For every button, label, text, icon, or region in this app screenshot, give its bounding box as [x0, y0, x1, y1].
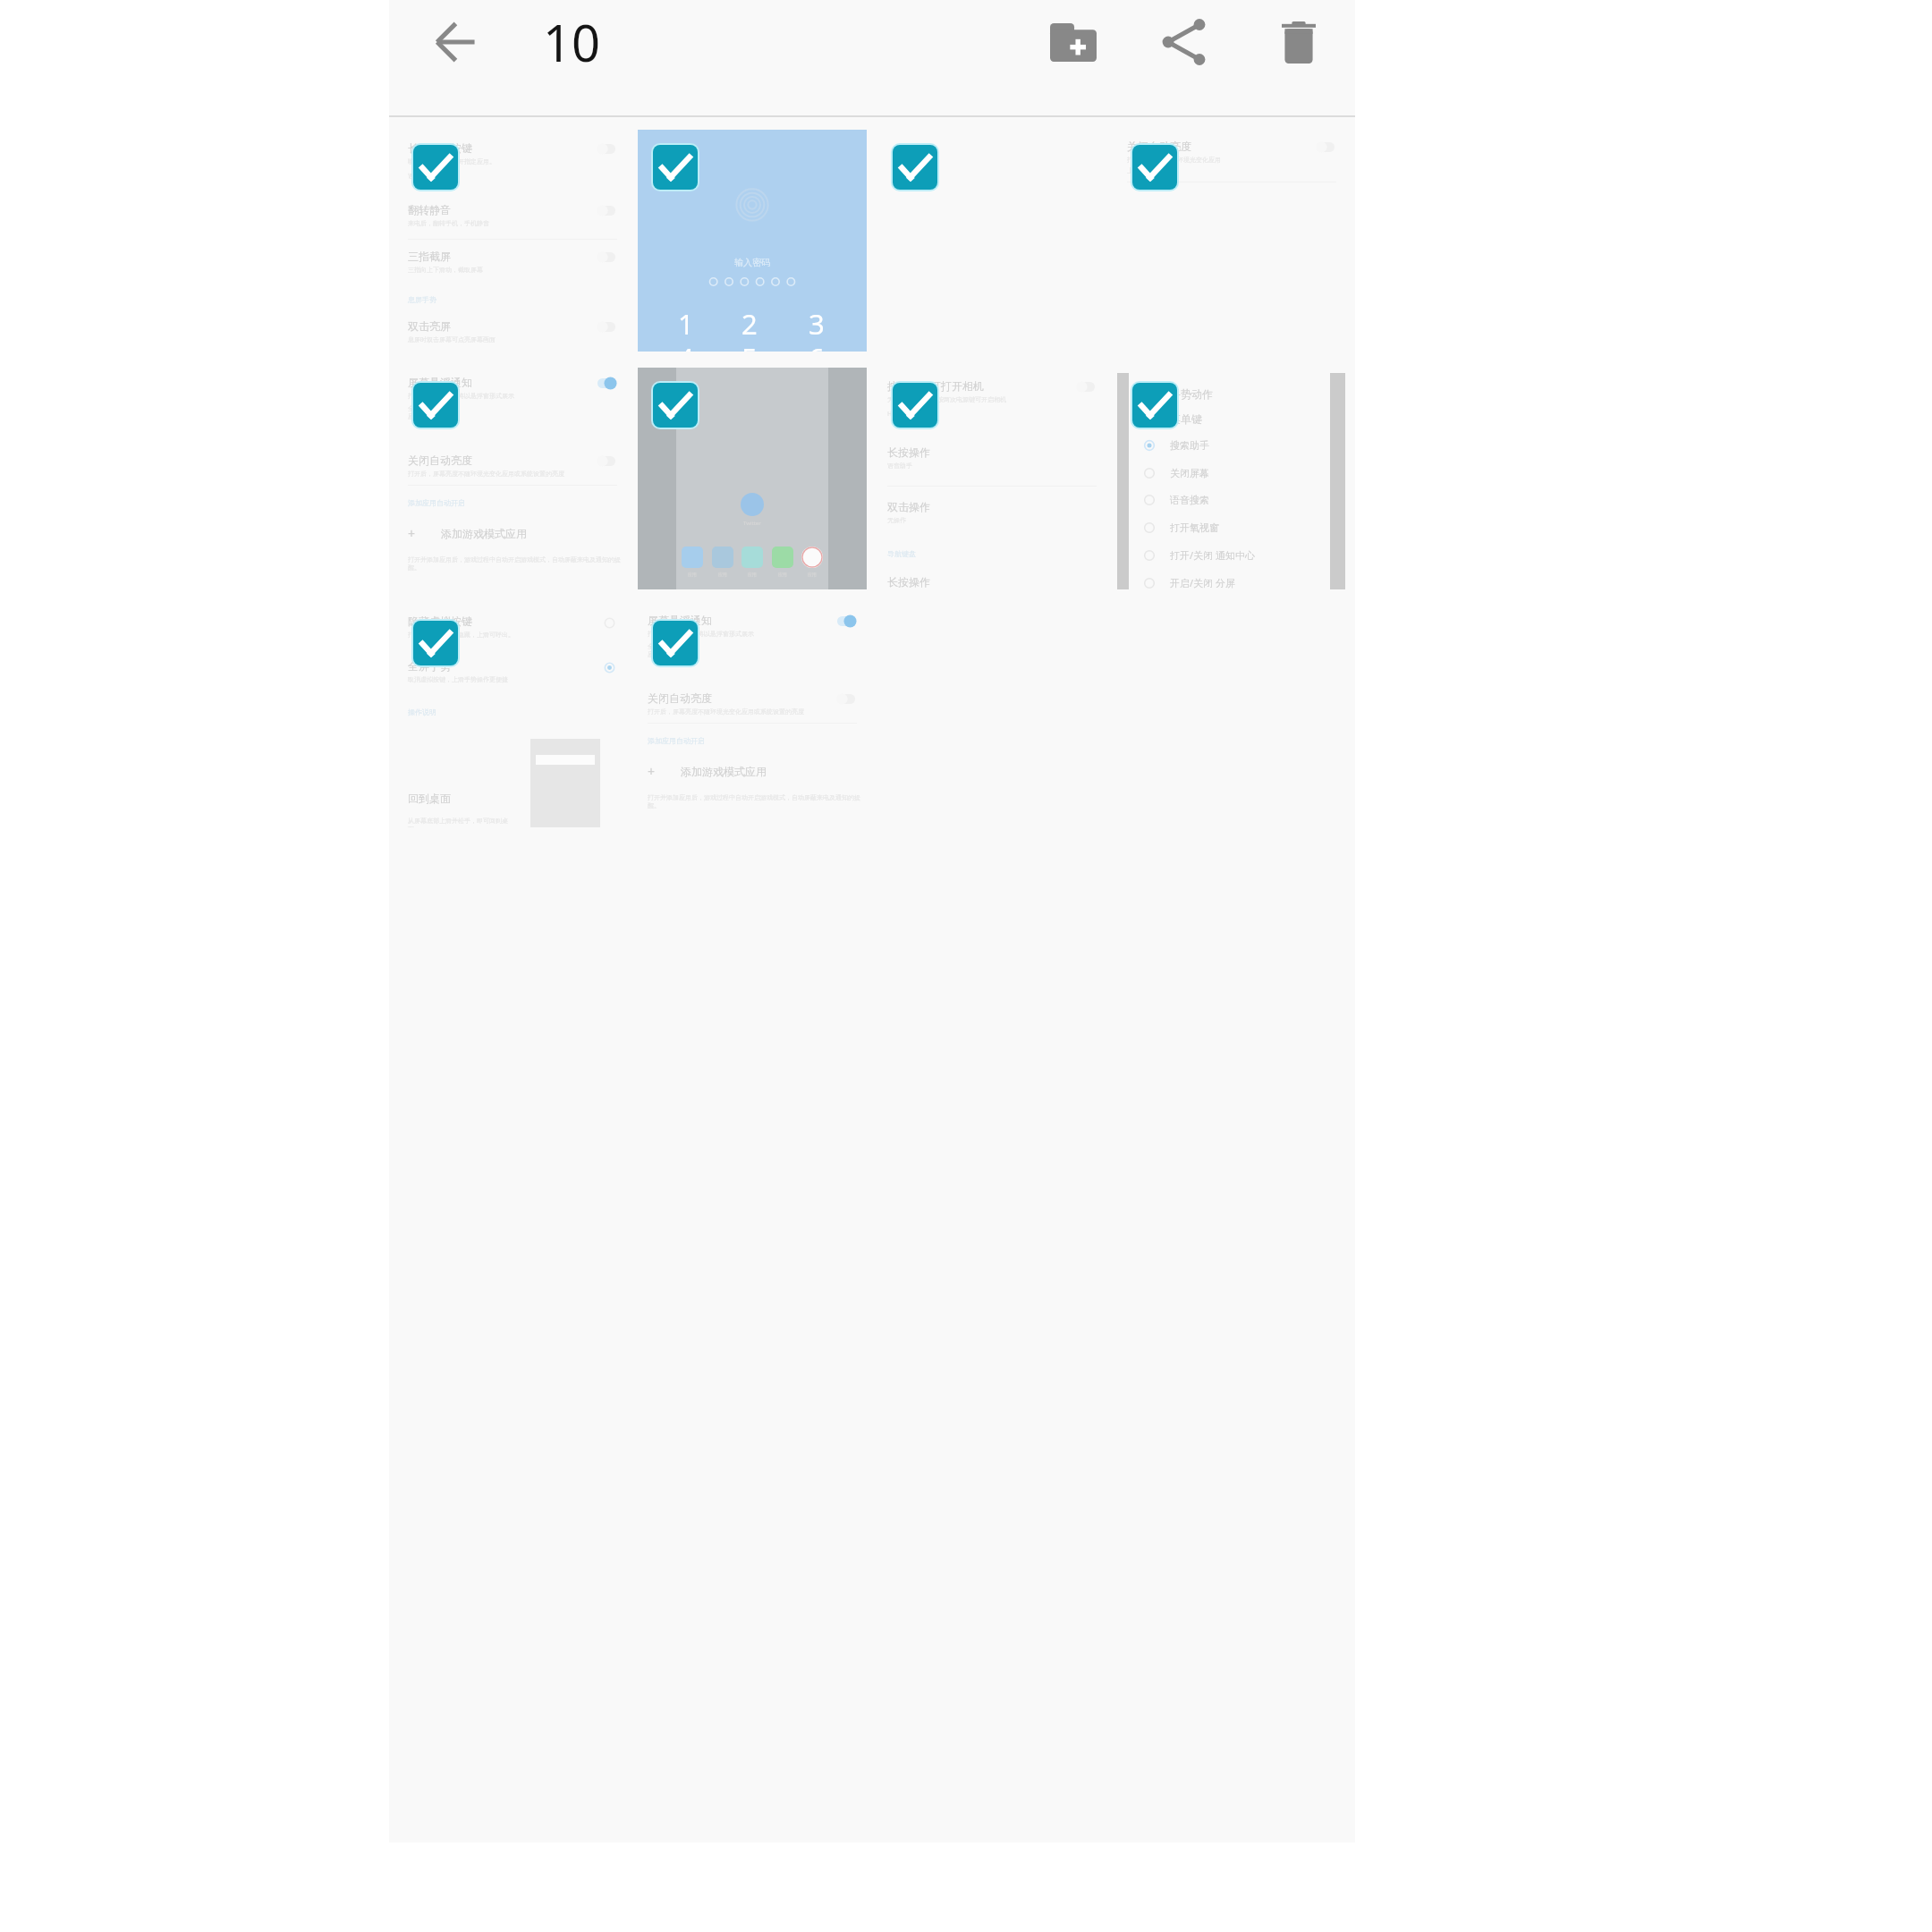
staticText: 屏幕悬浮通知: [648, 614, 712, 627]
staticText: 添加应用自动开启: [408, 498, 465, 507]
button[interactable]: Screenshot 4, selected: [1117, 130, 1346, 352]
staticText: 操作说明: [408, 708, 436, 716]
staticText: 语音助手: [408, 172, 433, 180]
staticText: 应用: [718, 572, 727, 577]
staticText: 语音搜索: [1170, 494, 1209, 506]
staticText: +: [648, 763, 656, 780]
staticText: 翻转静音: [408, 203, 451, 216]
staticText: 无论屏幕状态下，按两次电源键可开启相机: [887, 395, 1006, 403]
button[interactable]: Screenshot 2, selected: [638, 130, 867, 352]
staticText: 长按侧边按键: [408, 141, 472, 155]
staticText: 3: [809, 305, 825, 343]
staticText: 回到桌面: [408, 792, 451, 805]
button[interactable]: Back: [413, 0, 497, 84]
staticText: 来电后，翻转手机，手机静音: [408, 219, 489, 227]
staticText: 打开后，新的通知将以悬浮窗形式展示: [648, 630, 754, 638]
staticText: 唤醒语音助手或打开指定应用。: [408, 157, 496, 165]
staticText: 5: [741, 339, 758, 352]
staticText: 关闭自动亮度: [648, 691, 712, 705]
staticText: 双击操作: [887, 500, 930, 513]
staticText: 关闭自动亮度: [1127, 140, 1191, 153]
staticText: 三指截屏: [408, 250, 451, 263]
staticText: 全屏手势: [408, 659, 451, 673]
staticText: 输入密码: [734, 257, 770, 268]
staticText: 长按操作: [887, 445, 930, 459]
staticText: 按两次即可打开相机: [887, 379, 984, 393]
staticText: 10: [543, 8, 601, 76]
staticText: 打开后，新的通知将以悬浮窗形式展示: [408, 392, 514, 400]
staticText: 打开后，屏幕亮度不随环境光变化应用或系统设置的亮度: [408, 470, 564, 478]
button[interactable]: Screenshot 3, selected: [877, 130, 1106, 352]
staticText: 隐藏虚拟按键: [408, 614, 472, 628]
staticText: 打开并添加应用后，游戏过程中自动开启游戏模式，自动屏蔽来电及通知的提醒。: [648, 793, 867, 810]
staticText: +: [408, 525, 416, 542]
staticText: 打开后，虚拟按键隐藏，上滑可呼出。: [408, 631, 514, 639]
button[interactable]: Screenshot 8, selected: [1117, 368, 1346, 589]
staticText: 无操作: [887, 516, 906, 524]
staticText: 2: [741, 305, 758, 343]
staticText: 息屏时双击屏幕可点亮屏幕画面: [408, 335, 496, 343]
staticText: 全部 应用: [408, 404, 420, 421]
button[interactable]: Delete: [1257, 0, 1341, 84]
staticText: 6: [809, 339, 825, 352]
button[interactable]: Screenshot 5, selected: [398, 368, 627, 589]
staticText: 关闭自动亮度: [408, 453, 472, 467]
staticText: 4: [678, 339, 694, 352]
staticText: 打开/关闭 通知中心: [1170, 548, 1255, 562]
staticText: 从屏幕底部上滑并松手，即可回到桌面。: [408, 817, 519, 827]
button[interactable]: Screenshot 1, selected: [398, 130, 627, 352]
staticText: 菜单键: [1170, 412, 1202, 426]
staticText: 三指向上下滑动，截取屏幕: [408, 266, 483, 274]
staticText: 1: [678, 305, 694, 343]
button[interactable]: Screenshot 9, selected: [398, 606, 627, 827]
staticText: 长按操作: [887, 575, 930, 589]
staticText: 应用: [808, 572, 817, 577]
staticText: 手势动作: [1170, 387, 1213, 401]
staticText: 打开并添加应用后，游戏过程中自动开启游戏模式，自动屏蔽来电及通知的提醒。: [408, 555, 627, 572]
staticText: 全部 应用: [648, 642, 660, 659]
button[interactable]: Share: [1142, 0, 1226, 84]
staticText: 上午 12 时: [1127, 166, 1157, 175]
button[interactable]: Screenshot 6, selected: [638, 368, 867, 589]
staticText: 应用: [748, 572, 757, 577]
staticText: 应用: [688, 572, 697, 577]
button[interactable]: New folder: [1031, 0, 1115, 84]
staticText: 搜索助手: [1170, 439, 1209, 452]
staticText: Home键: [887, 410, 911, 419]
staticText: 屏幕悬浮通知: [408, 376, 472, 389]
button[interactable]: Screenshot 10, selected: [638, 606, 867, 827]
staticText: 添加游戏模式应用: [681, 765, 767, 778]
staticText: 打开后，屏幕亮度不随环境光变化应用或系统设置的亮度: [648, 708, 804, 716]
staticText: Twitter: [743, 520, 761, 527]
staticText: 语音助手: [887, 462, 912, 470]
button[interactable]: Screenshot 7, selected: [877, 368, 1106, 589]
staticText: 开启/关闭 分屏: [1170, 576, 1235, 589]
staticText: 导航键盘: [887, 549, 916, 558]
staticText: 打开后，亮度不随环境光变化应用: [1127, 156, 1221, 164]
staticText: 打开氧视窗: [1170, 521, 1219, 534]
staticText: 关闭屏幕: [1170, 467, 1209, 479]
staticText: 添加游戏模式应用: [441, 527, 527, 540]
staticText: 应用: [778, 572, 787, 577]
staticText: 双击亮屏: [408, 319, 451, 333]
staticText: 息屏手势: [408, 295, 436, 304]
staticText: 取消虚拟按键，上滑手势操作更便捷: [408, 675, 508, 683]
staticText: 添加应用自动开启: [648, 736, 705, 745]
